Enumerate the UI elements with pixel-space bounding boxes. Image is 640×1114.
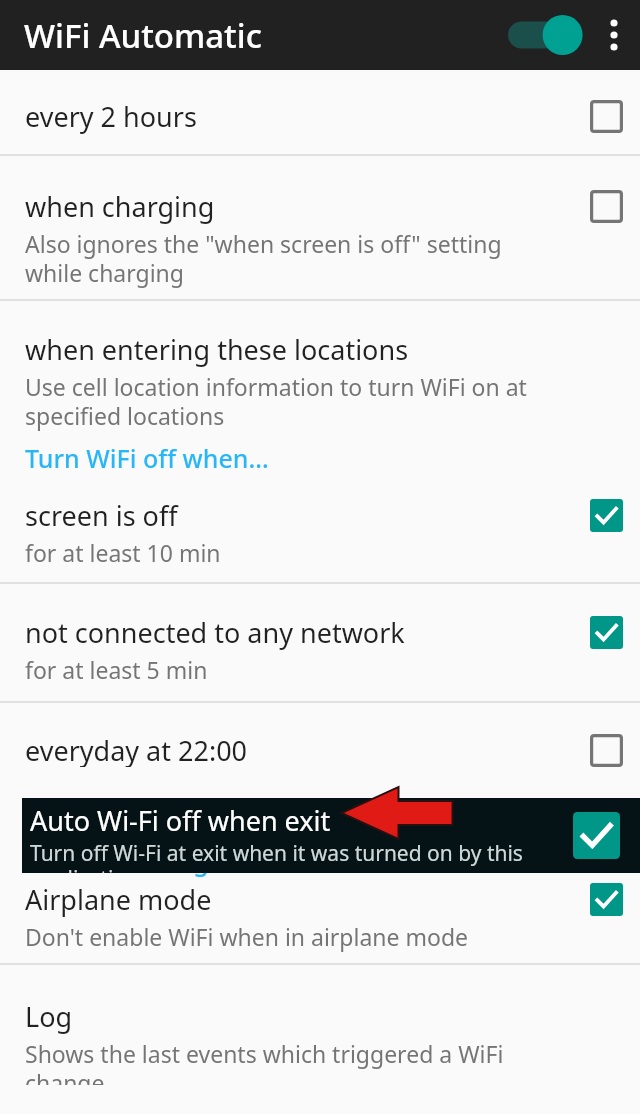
staticText: Log	[25, 998, 73, 1035]
staticText: Shows the last events which triggered a …	[25, 1038, 560, 1085]
button[interactable]: Checkbox, checked	[573, 812, 620, 859]
staticText: everyday at 22:00	[25, 732, 248, 767]
staticText: Don't enable WiFi when in airplane mode	[25, 921, 469, 952]
staticText: when entering these locations	[25, 331, 409, 368]
staticText: WiFi Automatic	[24, 13, 262, 58]
button[interactable]: Enable WiFi Automatic	[508, 11, 578, 59]
button[interactable]: every 2 hours	[0, 70, 640, 154]
staticText: Also ignores the "when screen is off" se…	[25, 228, 560, 289]
button[interactable]: Airplane mode	[0, 881, 640, 963]
staticText: General settings	[25, 844, 221, 878]
button[interactable]: Checkbox, checked	[590, 883, 623, 916]
staticText: Turn WiFi off when…	[25, 441, 269, 475]
button[interactable]: Checkbox, unchecked	[590, 190, 623, 223]
button[interactable]: Log	[0, 965, 640, 1085]
button[interactable]: when entering these locations	[0, 301, 640, 431]
staticText: not connected to any network	[25, 614, 405, 651]
button[interactable]: not connected to any network	[0, 584, 640, 701]
staticText: Use cell location information to turn Wi…	[25, 371, 560, 431]
button[interactable]: Checkbox, checked	[590, 499, 623, 532]
button[interactable]: when charging	[0, 156, 640, 299]
button[interactable]: screen is off	[0, 483, 640, 582]
staticText: for at least 5 min	[25, 654, 208, 685]
button[interactable]: Auto Wi-Fi off when exit	[22, 798, 640, 873]
staticText: every 2 hours	[25, 98, 197, 135]
staticText: Airplane mode	[25, 881, 212, 918]
button[interactable]: Checkbox, checked	[590, 616, 623, 649]
staticText: screen is off	[25, 497, 178, 534]
staticText: Auto Wi-Fi off when exit	[30, 802, 331, 839]
staticText: for at least 10 min	[25, 537, 221, 568]
staticText: when charging	[25, 188, 215, 225]
button[interactable]: Checkbox, unchecked	[590, 100, 623, 133]
button[interactable]: Checkbox, unchecked	[590, 734, 623, 767]
staticText: Turn off Wi-Fi at exit when it was turne…	[30, 839, 530, 873]
button[interactable]: More options	[592, 11, 640, 59]
button[interactable]: everyday at 22:00	[0, 703, 640, 767]
